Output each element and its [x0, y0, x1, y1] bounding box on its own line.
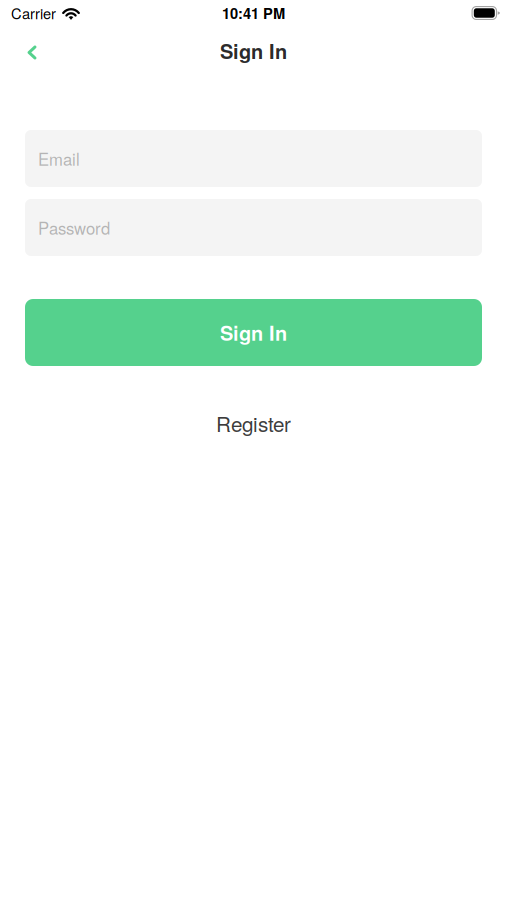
button[interactable]: Sign In: [25, 299, 482, 366]
staticText: Sign In: [220, 36, 287, 65]
button[interactable]: Back: [10, 30, 54, 74]
button[interactable]: Email: [25, 130, 482, 187]
staticText: Carrier: [11, 2, 56, 23]
staticText: Email: [38, 147, 80, 170]
staticText: Register: [216, 408, 291, 438]
button[interactable]: Register: [216, 413, 291, 433]
staticText: Password: [38, 216, 110, 239]
staticText: Sign In: [220, 318, 287, 347]
staticText: 10:41 PM: [222, 2, 285, 23]
button[interactable]: Password: [25, 199, 482, 256]
